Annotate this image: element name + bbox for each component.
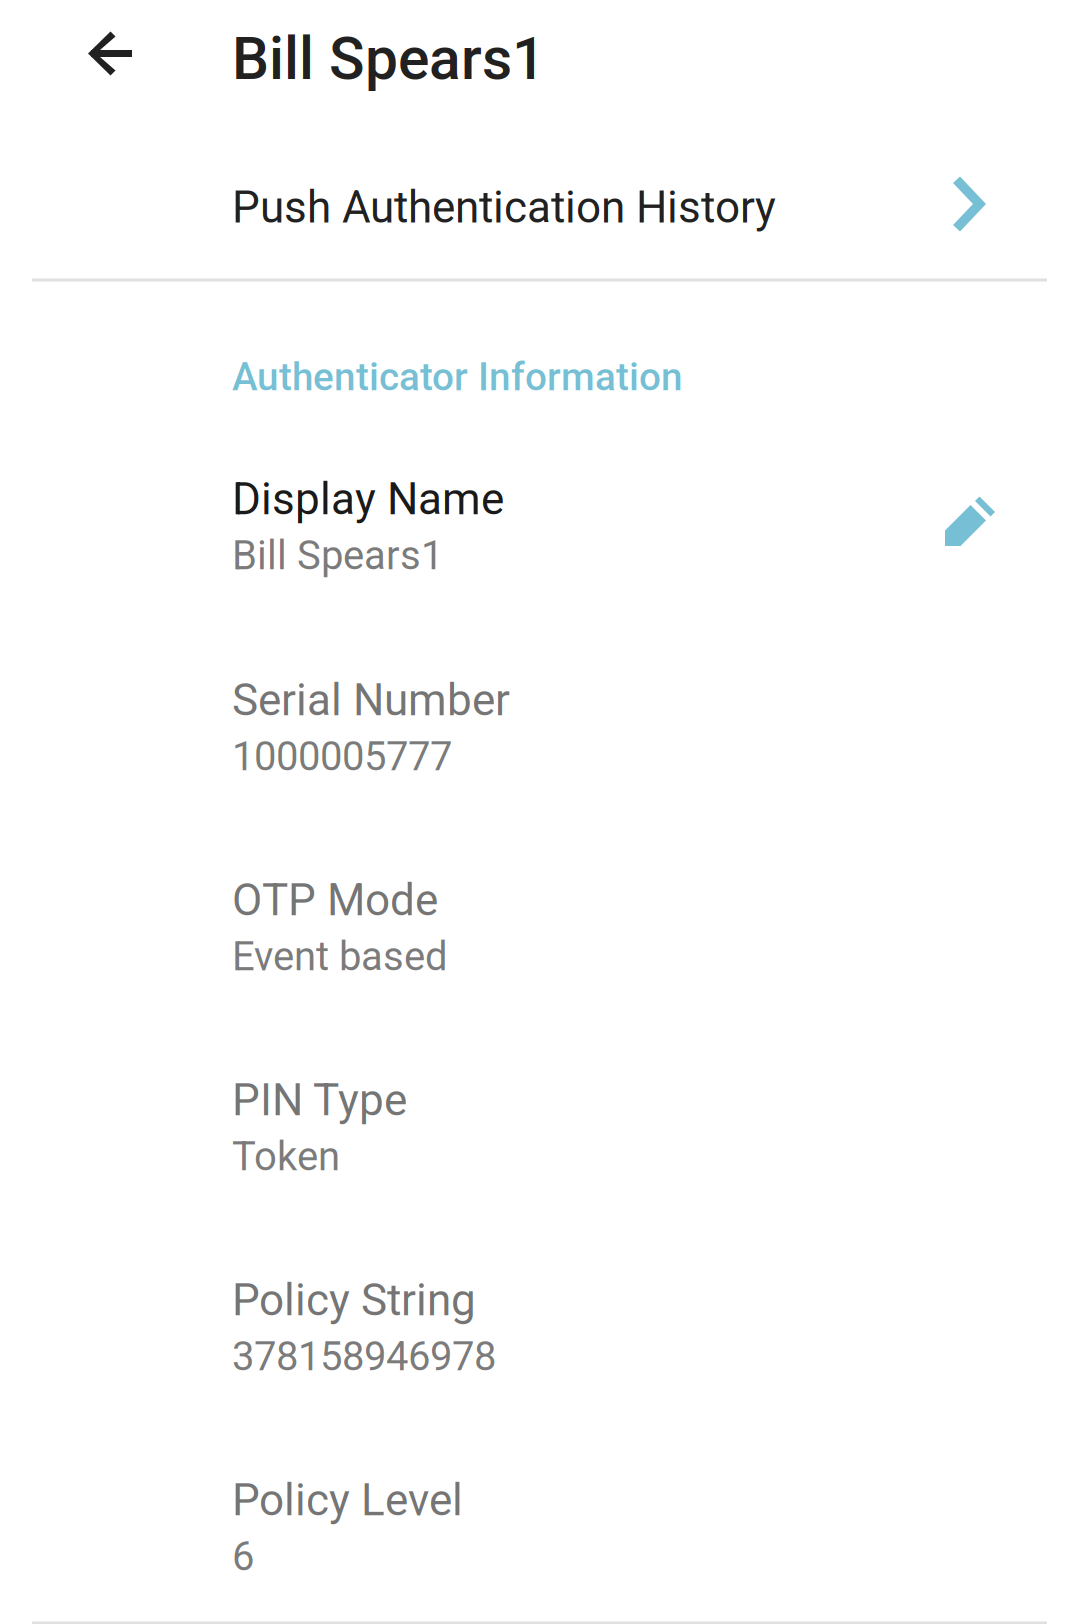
staticText: Event based	[232, 933, 448, 980]
staticText: Bill Spears1	[232, 532, 443, 579]
staticText: PIN Type	[232, 1074, 407, 1126]
staticText: Policy String	[232, 1274, 476, 1326]
button[interactable]: Back	[0, 0, 228, 109]
staticText: 1000005777	[232, 733, 452, 780]
staticText: 378158946978	[232, 1333, 496, 1380]
staticText: Authenticator Information	[232, 354, 683, 400]
staticText: OTP Mode	[232, 874, 438, 926]
staticText: 6	[232, 1533, 254, 1580]
staticText: Token	[232, 1133, 340, 1180]
button[interactable]: Edit display name	[919, 480, 1020, 563]
staticText: Push Authentication History	[232, 182, 776, 233]
staticText: Policy Level	[232, 1474, 463, 1526]
button[interactable]: Push Authentication History	[0, 157, 1080, 257]
staticText: Serial Number	[232, 674, 510, 726]
staticText: Display Name	[232, 473, 504, 525]
staticText: Bill Spears1	[232, 24, 545, 93]
